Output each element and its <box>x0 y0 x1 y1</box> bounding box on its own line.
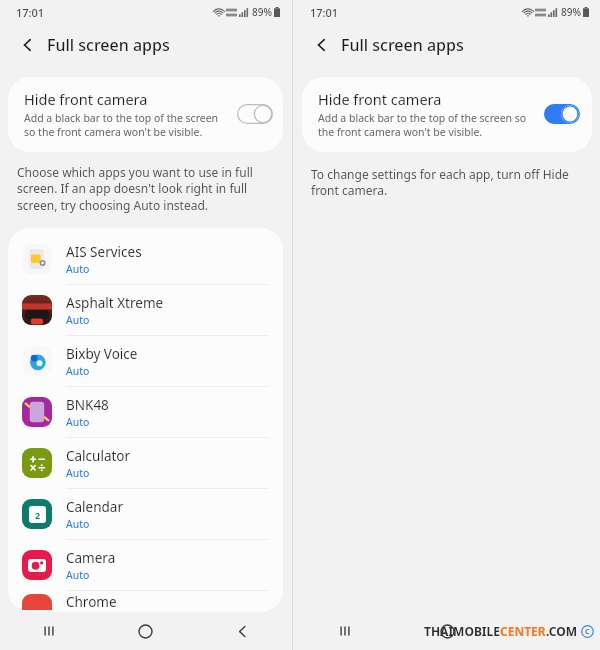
button[interactable]: Camera <box>8 540 283 591</box>
button[interactable]: Hide front camera toggle <box>237 104 273 124</box>
button[interactable]: Back <box>308 31 336 59</box>
staticText: Add a black bar to the top of the screen… <box>318 111 536 139</box>
button[interactable]: AIS Services <box>8 234 283 285</box>
staticText: THAIMOBILE <box>424 623 500 639</box>
button[interactable]: 2 <box>8 489 283 540</box>
button[interactable]: Home <box>396 612 498 650</box>
button[interactable]: Back <box>498 612 600 650</box>
staticText: Calendar <box>66 498 123 516</box>
staticText: To change settings for each app, turn of… <box>311 166 583 199</box>
staticText: 17:01 <box>16 5 45 20</box>
staticText: Auto <box>66 517 90 531</box>
staticText: AIS Services <box>66 243 142 261</box>
button[interactable]: Back <box>14 31 42 59</box>
button[interactable]: Recent apps <box>294 612 396 650</box>
button[interactable]: Asphalt Xtreme <box>8 285 283 336</box>
staticText: Full screen apps <box>47 34 170 56</box>
staticText: Full screen apps <box>341 34 464 56</box>
staticText: 89% <box>561 5 581 19</box>
button[interactable]: Hide front camera toggle <box>544 104 580 124</box>
button[interactable]: Calculator <box>8 438 283 489</box>
staticText: Auto <box>66 313 90 327</box>
staticText: BNK48 <box>66 396 109 414</box>
staticText: 17:01 <box>310 5 339 20</box>
staticText: Bixby Voice <box>66 345 138 363</box>
staticText: Auto <box>66 364 90 378</box>
staticText: Calculator <box>66 447 131 465</box>
staticText: Auto <box>66 466 90 480</box>
staticText: Chrome <box>66 593 117 611</box>
button[interactable]: Recent apps <box>0 612 97 650</box>
button[interactable]: Home <box>97 612 194 650</box>
staticText: Choose which apps you want to use in ful… <box>17 164 274 214</box>
staticText: 89% <box>252 5 272 19</box>
staticText: C <box>585 627 590 637</box>
staticText: .COM <box>546 623 578 639</box>
staticText: Camera <box>66 549 116 567</box>
staticText: 2 <box>35 509 41 521</box>
staticText: Add a black bar to the top of the screen… <box>24 111 229 139</box>
staticText: CENTER <box>500 623 546 639</box>
staticText: Hide front camera <box>24 89 148 109</box>
staticText: Hide front camera <box>318 89 442 109</box>
staticText: Asphalt Xtreme <box>66 294 164 312</box>
staticText: Auto <box>66 415 90 429</box>
button[interactable]: Hide front camera <box>302 77 592 152</box>
staticText: Auto <box>66 262 90 276</box>
button[interactable]: Hide front camera <box>8 77 283 152</box>
button[interactable]: Bixby Voice <box>8 336 283 387</box>
button[interactable]: Back <box>194 612 291 650</box>
staticText: Auto <box>66 568 90 582</box>
button[interactable]: BNK48 <box>8 387 283 438</box>
